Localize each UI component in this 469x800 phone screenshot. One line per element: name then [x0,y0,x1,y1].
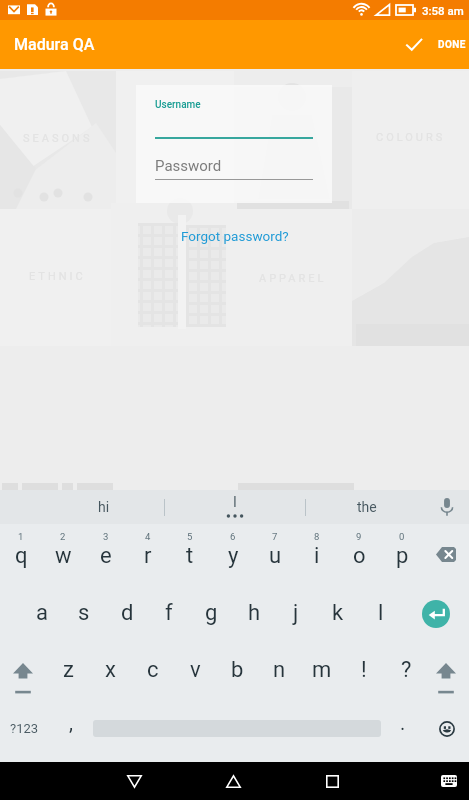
button[interactable]: Emoji [425,700,469,757]
staticText: Username [155,99,201,111]
button[interactable]: m [301,643,343,700]
staticText: SEASONS [23,132,93,145]
staticText: e [100,543,112,569]
button[interactable]: j [275,586,317,643]
staticText: ?123 [10,721,39,736]
staticText: w [55,543,72,569]
button[interactable]: Back [106,762,162,800]
button[interactable]: Voice input [425,490,469,524]
button[interactable]: f [148,586,190,643]
staticText: I [233,494,237,510]
staticText: ETHNIC [29,270,86,283]
button[interactable]: Switch keyboard [429,762,469,800]
button[interactable]: 7 [254,529,296,586]
staticText: d [121,600,134,626]
staticText: Forgot password? [181,228,289,244]
staticText: APPAREL [259,272,327,285]
button[interactable]: Forgot password? [171,222,299,250]
staticText: 3:58 am [422,4,464,17]
staticText: p [396,543,409,569]
button[interactable]: k [317,586,359,643]
staticText: 3 [103,531,109,542]
button[interactable]: ! [343,643,385,700]
staticText: h [248,600,261,626]
button[interactable]: v [174,643,216,700]
staticText: s [78,600,90,626]
button[interactable]: 8 [296,529,338,586]
button[interactable]: c [132,643,174,700]
staticText: the [357,499,377,515]
staticText: j [293,600,299,626]
staticText: . [400,711,406,734]
button[interactable]: 2 [42,529,84,586]
button[interactable]: x [89,643,131,700]
button[interactable]: g [190,586,232,643]
button[interactable]: Home [205,762,261,800]
staticText: 8 [314,531,320,542]
button[interactable]: Backspace [423,529,469,586]
button[interactable]: b [216,643,258,700]
staticText: 6 [230,531,236,542]
staticText: Madura QA [14,35,95,54]
button[interactable]: 5 [169,529,211,586]
staticText: hi [98,499,110,515]
staticText: x [105,657,116,683]
staticText: ? [401,657,412,683]
staticText: DONE [438,39,466,51]
button[interactable]: z [47,643,89,700]
button[interactable]: Shift [423,643,469,700]
staticText: t [186,543,194,569]
button[interactable]: Done [412,20,469,69]
staticText: m [312,657,332,683]
staticText: a [36,600,48,626]
staticText: f [165,600,173,626]
staticText: z [63,657,74,683]
button[interactable]: a [21,586,63,643]
staticText: o [353,543,366,569]
staticText: i [314,543,320,569]
button[interactable]: ?123 [0,700,48,757]
staticText: k [332,600,344,626]
staticText: r [144,543,152,569]
staticText: c [147,657,159,683]
button[interactable]: 4 [127,529,169,586]
button[interactable]: ? [385,643,427,700]
staticText: q [15,543,28,569]
button[interactable]: hi [0,490,164,524]
staticText: b [231,657,244,683]
staticText: 0 [399,531,405,542]
staticText: g [205,600,218,626]
staticText: 1 [18,531,24,542]
button[interactable]: . [381,700,425,757]
button[interactable]: the [305,490,425,524]
staticText: 9 [356,531,362,542]
button[interactable]: 6 [212,529,254,586]
staticText: 4 [145,531,151,542]
button[interactable]: s [63,586,105,643]
staticText: l [378,600,384,626]
button[interactable]: Recent apps [304,762,360,800]
button[interactable]: Shift [0,643,46,700]
staticText: v [190,657,201,683]
staticText: y [228,543,239,569]
button[interactable]: d [106,586,148,643]
button[interactable]: 3 [85,529,127,586]
button[interactable]: I [164,490,305,524]
button[interactable]: 9 [338,529,380,586]
button[interactable]: h [233,586,275,643]
staticText: ! [361,657,367,683]
staticText: , [69,711,73,734]
staticText: Password [155,157,222,175]
button[interactable]: , [48,700,93,757]
button[interactable]: n [258,643,300,700]
button[interactable]: 1 [0,529,42,586]
staticText: 2 [60,531,66,542]
staticText: 7 [272,531,278,542]
button[interactable]: 0 [381,529,423,586]
staticText: COLOURS [376,131,446,144]
button[interactable]: Space [93,700,381,757]
staticText: u [269,543,282,569]
button[interactable]: l [360,586,402,643]
staticText: n [273,657,286,683]
button[interactable]: Enter [405,586,469,643]
